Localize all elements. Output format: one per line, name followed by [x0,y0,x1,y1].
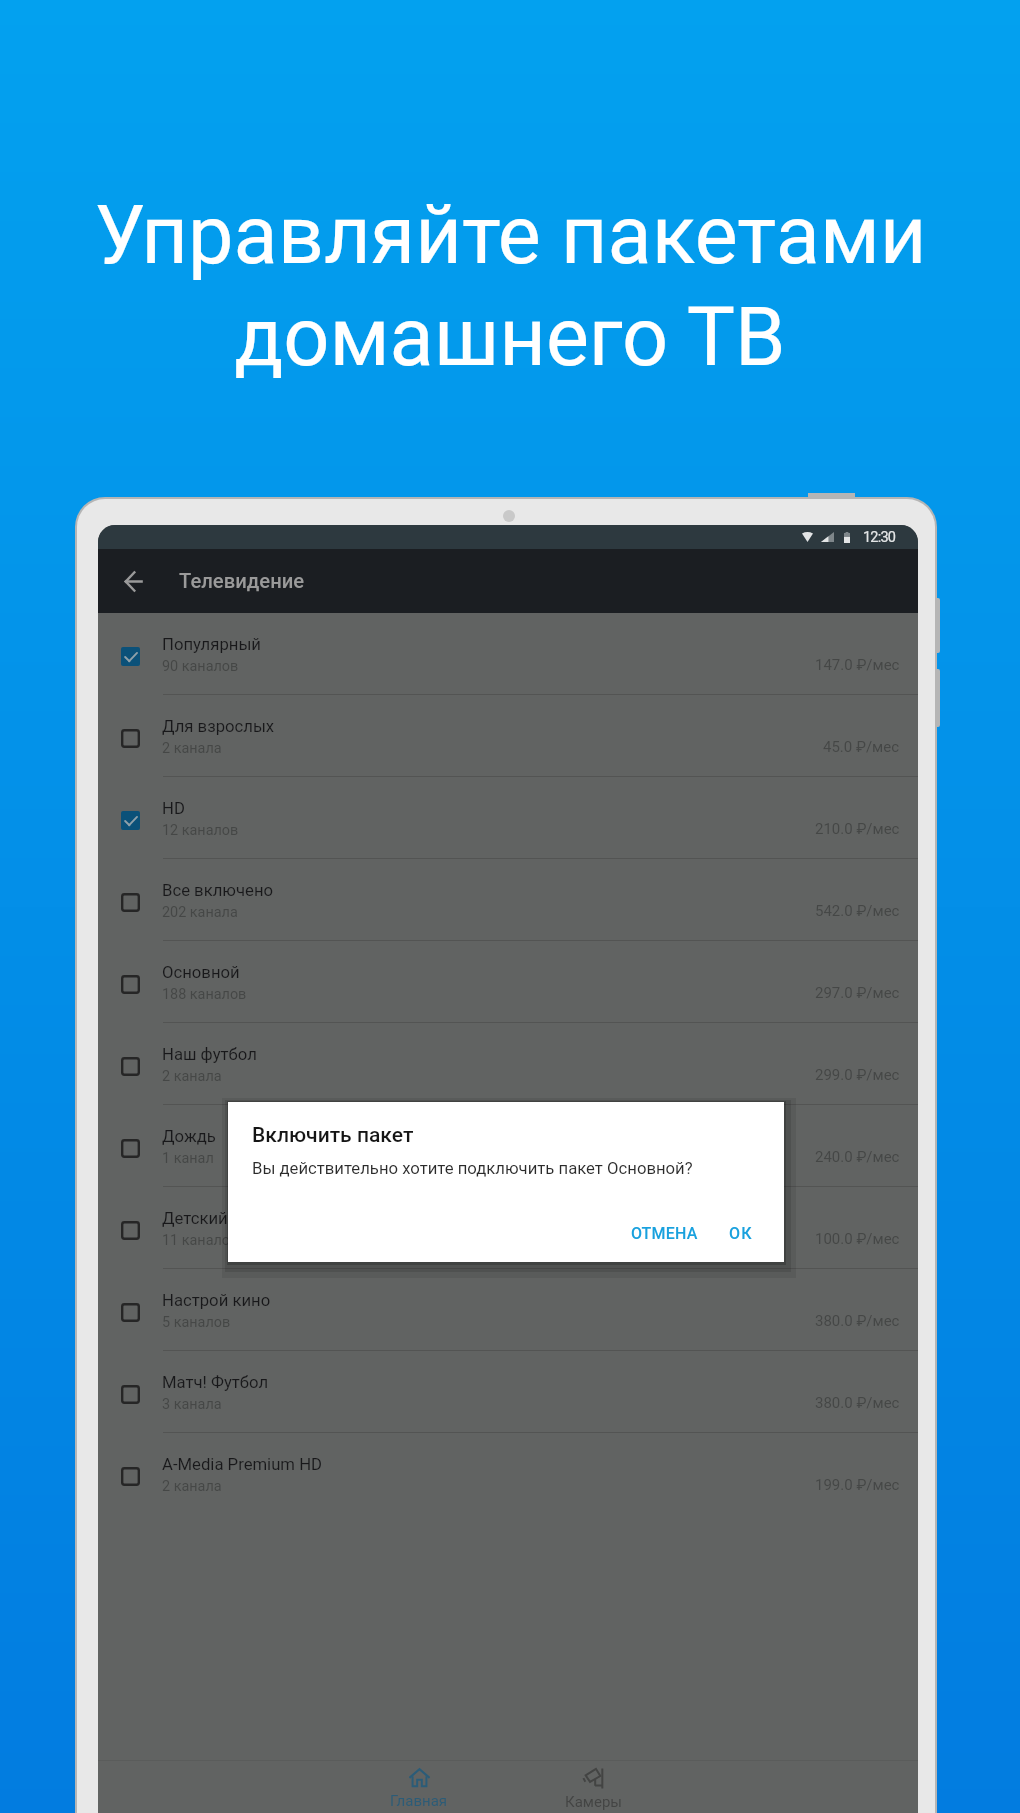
button[interactable]: Детский [98,1187,918,1269]
staticText: 1 канал [162,1150,214,1167]
button[interactable]: Камеры [506,1760,680,1813]
button[interactable]: Матч! Футбол [98,1351,918,1433]
staticText: A-Media Premium HD [162,1455,322,1475]
staticText: HD [162,799,185,819]
staticText: Все включено [162,881,274,901]
staticText: 380.0 ₽/мес [815,1312,900,1330]
staticText: Основной [162,963,240,983]
button[interactable]: Все включено [98,859,918,941]
button[interactable]: A-Media Premium HD [98,1433,918,1515]
staticText: 2 канала [162,740,222,757]
staticText: 12:30 [863,529,896,546]
staticText: ОТМЕНА [631,1224,698,1243]
staticText: 199.0 ₽/мес [815,1476,900,1494]
button[interactable]: Основной [98,941,918,1023]
button[interactable]: Для взрослых [98,695,918,777]
button[interactable]: Наш футбол [98,1023,918,1105]
staticText: 90 каналов [162,658,239,675]
staticText: Наш футбол [162,1045,257,1065]
staticText: 11 каналов [162,1232,239,1249]
staticText: домашнего ТВ [234,290,786,385]
button[interactable]: ОК [717,1216,765,1251]
button[interactable]: HD [98,777,918,859]
button[interactable]: ОТМЕНА [619,1216,710,1251]
staticText: Популярный [162,635,262,655]
button[interactable]: Популярный [98,613,918,695]
staticText: 380.0 ₽/мес [815,1394,900,1412]
staticText: Для взрослых [162,717,275,737]
staticText: Камеры [565,1793,622,1811]
staticText: 45.0 ₽/мес [823,738,900,756]
staticText: 2 канала [162,1478,222,1495]
button[interactable]: Настрой кино [98,1269,918,1351]
staticText: Дождь [162,1127,216,1147]
staticText: 3 канала [162,1396,222,1413]
staticText: 299.0 ₽/мес [815,1066,900,1084]
staticText: Детский [162,1209,228,1229]
staticText: Управляйте пакетами [94,188,927,283]
button[interactable]: Дождь [98,1105,918,1187]
staticText: 240.0 ₽/мес [815,1148,900,1166]
staticText: Вы действительно хотите подключить пакет… [252,1159,693,1179]
staticText: 12 каналов [162,822,239,839]
staticText: Настрой кино [162,1291,271,1311]
staticText: ОК [729,1224,753,1243]
staticText: 5 каналов [162,1314,231,1331]
staticText: 147.0 ₽/мес [815,656,900,674]
staticText: Телевидение [179,569,305,593]
button[interactable]: Back [111,558,157,604]
staticText: 297.0 ₽/мес [815,984,900,1002]
staticText: 100.0 ₽/мес [815,1230,900,1248]
staticText: 2 канала [162,1068,222,1085]
staticText: 542.0 ₽/мес [815,902,900,920]
staticText: Включить пакет [252,1123,414,1148]
staticText: 188 каналов [162,986,247,1003]
button[interactable]: Главная [332,1760,506,1813]
staticText: 202 канала [162,904,238,921]
staticText: 210.0 ₽/мес [815,820,900,838]
staticText: Матч! Футбол [162,1373,269,1393]
staticText: Главная [390,1792,448,1810]
